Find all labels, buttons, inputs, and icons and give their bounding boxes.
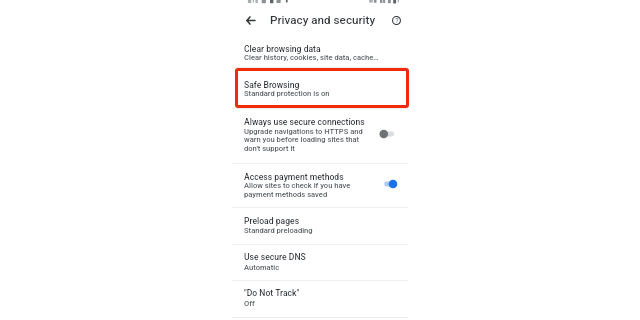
button[interactable]: Access payment methods, on (379, 179, 401, 189)
staticText: Always use secure connections (244, 117, 365, 127)
button[interactable] (232, 108, 408, 162)
staticText: Safe Browsing (244, 80, 300, 90)
staticText: Automatic (244, 263, 280, 272)
staticText: Standard protection is on (244, 89, 330, 98)
button[interactable]: Back (241, 11, 260, 30)
button[interactable]: Always use secure connections, off (379, 129, 401, 139)
button[interactable] (232, 281, 408, 316)
staticText: don't support it (244, 144, 295, 153)
button[interactable] (232, 244, 408, 280)
staticText: Standard preloading (244, 226, 313, 235)
button[interactable] (232, 207, 408, 243)
staticText: Preload pages (244, 216, 300, 226)
staticText: Allow sites to check if you have (244, 181, 351, 190)
staticText: warn you before loading sites that (244, 135, 360, 144)
staticText: Clear browsing data (244, 44, 321, 54)
staticText: Use secure DNS (244, 252, 306, 262)
button[interactable] (232, 163, 408, 206)
button[interactable] (232, 33, 408, 66)
staticText: Upgrade navigations to HTTPS and (244, 127, 363, 136)
button[interactable]: Help (387, 11, 406, 30)
staticText: payment methods saved (244, 190, 328, 199)
staticText: Access payment methods (244, 172, 344, 182)
button[interactable] (232, 67, 408, 107)
staticText: "Do Not Track" (244, 288, 300, 298)
staticText: Off (244, 299, 255, 308)
staticText: Clear history, cookies, site data, cache… (244, 53, 379, 62)
staticText: Privacy and security (270, 13, 376, 27)
staticText: ? (395, 17, 399, 25)
